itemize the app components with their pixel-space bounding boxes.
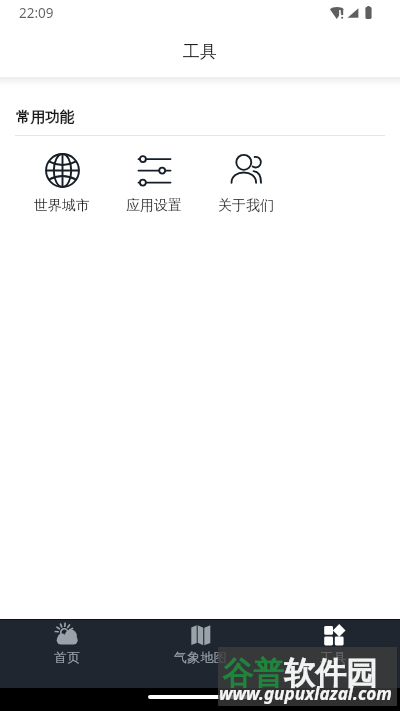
staticText: 22:09 — [19, 4, 54, 22]
staticText: 首页 — [54, 649, 81, 666]
staticText: www.gupuxlazal.com — [219, 682, 392, 705]
button[interactable]: 关于我们 — [200, 153, 292, 215]
staticText: 谷普 — [222, 654, 284, 693]
staticText: 工具 — [183, 41, 217, 62]
button[interactable]: 气象地图 — [134, 620, 267, 688]
staticText: 关于我们 — [218, 197, 274, 215]
button[interactable]: 应用设置 — [108, 153, 200, 215]
button[interactable]: 世界城市 — [16, 153, 108, 215]
button[interactable]: 首页 — [0, 620, 134, 688]
staticText: 软件园 — [284, 654, 377, 693]
staticText: 应用设置 — [126, 197, 182, 215]
button[interactable]: 工具 — [267, 620, 400, 688]
staticText: 气象地图 — [174, 649, 227, 666]
staticText: 工具 — [320, 649, 347, 666]
staticText: 常用功能 — [16, 108, 74, 126]
staticText: 世界城市 — [34, 197, 90, 215]
